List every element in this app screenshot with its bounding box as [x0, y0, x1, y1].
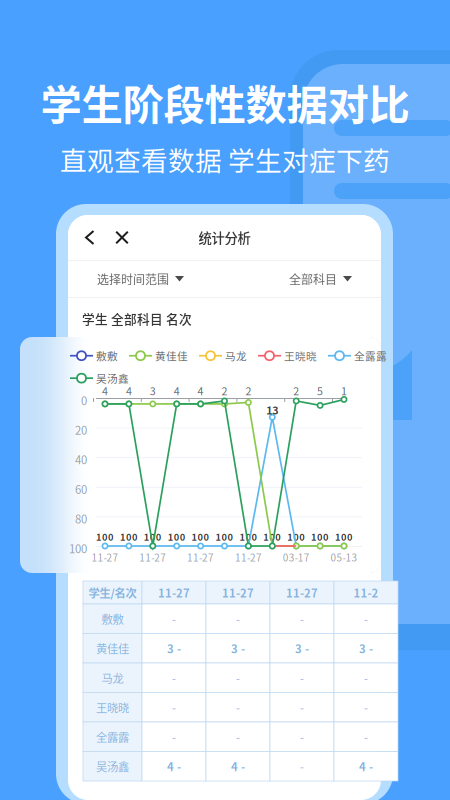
- staticText: 统计分析: [198, 228, 250, 247]
- staticText: 4: [102, 383, 108, 398]
- staticText: 100: [69, 540, 87, 556]
- staticText: 4 -: [359, 758, 373, 774]
- staticText: 2: [293, 383, 299, 398]
- staticText: 80: [75, 510, 87, 527]
- staticText: -: [236, 728, 240, 745]
- staticText: 40: [75, 451, 87, 468]
- staticText: -: [364, 728, 368, 745]
- staticText: -: [172, 728, 176, 745]
- staticText: -: [172, 610, 176, 627]
- staticText: 5: [317, 383, 323, 398]
- staticText: 05-13: [330, 550, 357, 564]
- staticText: 11-2: [353, 584, 378, 601]
- staticText: 直观查看数据 学生对症下药: [60, 140, 390, 178]
- staticText: 100: [287, 530, 305, 543]
- staticText: -: [236, 699, 240, 715]
- staticText: 全部科目: [289, 270, 337, 288]
- staticText: 3 -: [295, 640, 309, 656]
- staticText: -: [300, 699, 304, 715]
- staticText: -: [364, 699, 368, 715]
- button[interactable]: 关闭: [106, 215, 138, 260]
- staticText: -: [300, 610, 304, 627]
- staticText: 2: [221, 383, 227, 398]
- staticText: 100: [120, 530, 138, 543]
- staticText: 4 -: [231, 758, 245, 774]
- staticText: 100: [311, 530, 329, 543]
- staticText: -: [300, 758, 304, 774]
- staticText: 11-27: [187, 550, 214, 564]
- staticText: 3 -: [359, 640, 373, 656]
- staticText: -: [236, 610, 240, 627]
- staticText: 敷敷: [101, 610, 123, 627]
- staticText: 3 -: [231, 640, 245, 656]
- staticText: 吴汤鑫: [96, 370, 129, 386]
- staticText: 100: [239, 530, 257, 543]
- staticText: 学生 全部科目 名次: [82, 309, 192, 328]
- staticText: 王晓晓: [96, 699, 129, 715]
- staticText: 13: [266, 402, 278, 418]
- staticText: 11-27: [91, 550, 118, 564]
- staticText: 1: [341, 383, 347, 398]
- staticText: 100: [168, 530, 186, 543]
- staticText: -: [172, 699, 176, 715]
- staticText: 学生/名次: [88, 584, 136, 601]
- staticText: 100: [215, 530, 233, 543]
- staticText: 3 -: [167, 640, 181, 656]
- staticText: 选择时间范围: [97, 270, 169, 288]
- staticText: -: [300, 669, 304, 686]
- staticText: 4: [198, 383, 204, 398]
- staticText: 11-27: [139, 550, 166, 564]
- staticText: 03-17: [283, 550, 310, 564]
- staticText: 2: [245, 383, 251, 398]
- staticText: 全露露: [96, 728, 129, 745]
- staticText: 100: [144, 530, 162, 543]
- staticText: 学生阶段性数据对比: [40, 72, 409, 132]
- staticText: 3: [150, 383, 156, 398]
- staticText: 0: [81, 392, 87, 408]
- staticText: 11-27: [286, 584, 318, 601]
- staticText: -: [236, 669, 240, 686]
- staticText: 100: [335, 530, 353, 543]
- staticText: 11-27: [222, 584, 254, 601]
- staticText: 11-27: [235, 550, 262, 564]
- staticText: -: [300, 728, 304, 745]
- staticText: 11-27: [158, 584, 190, 601]
- staticText: 敷敷: [96, 348, 118, 363]
- staticText: 马龙: [225, 348, 247, 363]
- staticText: 100: [192, 530, 210, 543]
- staticText: 全露露: [354, 348, 387, 363]
- staticText: 黄佳佳: [155, 348, 188, 363]
- button[interactable]: 全部科目: [262, 261, 352, 297]
- staticText: 4: [126, 383, 132, 398]
- button[interactable]: 返回: [74, 215, 106, 260]
- staticText: 4 -: [167, 758, 181, 774]
- staticText: 王晓晓: [284, 348, 317, 363]
- staticText: 吴汤鑫: [96, 758, 129, 774]
- button[interactable]: 选择时间范围: [97, 261, 217, 297]
- staticText: 100: [263, 530, 281, 543]
- staticText: -: [172, 669, 176, 686]
- staticText: 20: [75, 422, 87, 438]
- staticText: -: [364, 669, 368, 686]
- staticText: 马龙: [101, 669, 123, 686]
- staticText: -: [364, 610, 368, 627]
- staticText: 100: [96, 530, 114, 543]
- staticText: 黄佳佳: [96, 640, 129, 656]
- staticText: 4: [174, 383, 180, 398]
- staticText: 60: [75, 481, 87, 497]
